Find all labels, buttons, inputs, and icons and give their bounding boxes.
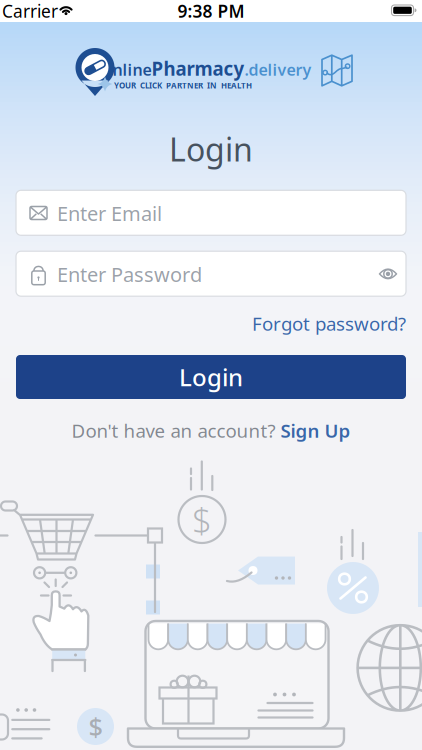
staticText: Pharmacy bbox=[151, 56, 244, 81]
staticText: Don't have an account? bbox=[71, 418, 275, 443]
staticText: CLICK bbox=[140, 80, 162, 91]
staticText: .delivery bbox=[244, 59, 311, 80]
staticText: $ bbox=[88, 710, 102, 743]
staticText: Forgot password? bbox=[252, 311, 406, 336]
staticText: $ bbox=[192, 497, 212, 543]
button[interactable]: Forgot password? bbox=[252, 311, 406, 336]
staticText: Login bbox=[169, 128, 253, 170]
staticText: Email bbox=[111, 200, 162, 227]
staticText: Enter bbox=[57, 261, 106, 287]
button[interactable]: Show password bbox=[373, 259, 403, 289]
staticText: YOUR bbox=[114, 80, 136, 91]
button[interactable]: Enter bbox=[16, 251, 406, 296]
staticText: HEALTH bbox=[221, 80, 252, 91]
button[interactable]: Login bbox=[16, 355, 406, 399]
staticText: IN bbox=[207, 80, 217, 91]
staticText: Carrier bbox=[2, 0, 58, 22]
staticText: Enter bbox=[57, 200, 106, 227]
staticText: Login bbox=[179, 361, 243, 393]
staticText: Sign Up bbox=[280, 418, 350, 443]
staticText: Password bbox=[111, 261, 202, 287]
staticText: 9:38 PM bbox=[177, 0, 244, 22]
button[interactable]: Enter bbox=[16, 190, 406, 235]
staticText: nline bbox=[112, 59, 151, 80]
button[interactable]: Sign Up bbox=[280, 418, 350, 443]
staticText: PARTNER bbox=[166, 80, 203, 91]
